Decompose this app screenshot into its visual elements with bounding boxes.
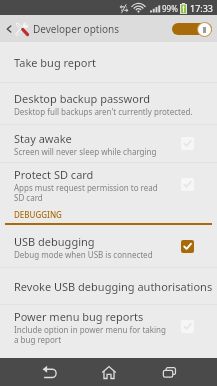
staticText: Screen will never sleep while charging — [14, 146, 180, 157]
staticText: Revoke USB debugging authorisations — [14, 279, 213, 294]
staticText: 17:33 — [190, 2, 214, 14]
staticText: Power menu bug reports — [14, 309, 144, 324]
staticText: Apps must request permission to read SD … — [14, 182, 166, 203]
staticText: Desktop full backups aren't currently pr… — [14, 106, 214, 117]
staticText: Desktop backup password — [14, 91, 151, 106]
staticText: Take bug report — [14, 55, 96, 70]
button[interactable]: Take bug report — [0, 42, 217, 82]
staticText: 99% — [162, 3, 178, 14]
button[interactable]: Recent apps — [139, 358, 199, 386]
button[interactable]: Stay awake — [0, 125, 217, 162]
button[interactable]: Back — [19, 358, 79, 386]
button[interactable]: Navigate up — [3, 17, 14, 41]
staticText: DEBUGGING — [14, 209, 62, 220]
staticText: Protect SD card — [14, 167, 94, 182]
button[interactable]: Desktop backup password — [0, 83, 217, 124]
button[interactable]: Home — [79, 358, 139, 386]
staticText: USB debugging — [14, 234, 95, 249]
staticText: Include option in power menu for taking … — [14, 324, 166, 345]
staticText: Developer options — [33, 22, 120, 36]
button[interactable]: Power menu bug reports — [0, 305, 217, 348]
button[interactable]: Developer options toggle — [172, 21, 212, 37]
button[interactable]: Revoke USB debugging authorisations — [0, 268, 217, 304]
button[interactable]: Protect SD card — [0, 163, 217, 206]
button[interactable]: USB debugging — [0, 226, 217, 267]
staticText: Debug mode when USB is connected — [14, 249, 180, 260]
staticText: Stay awake — [14, 131, 72, 146]
